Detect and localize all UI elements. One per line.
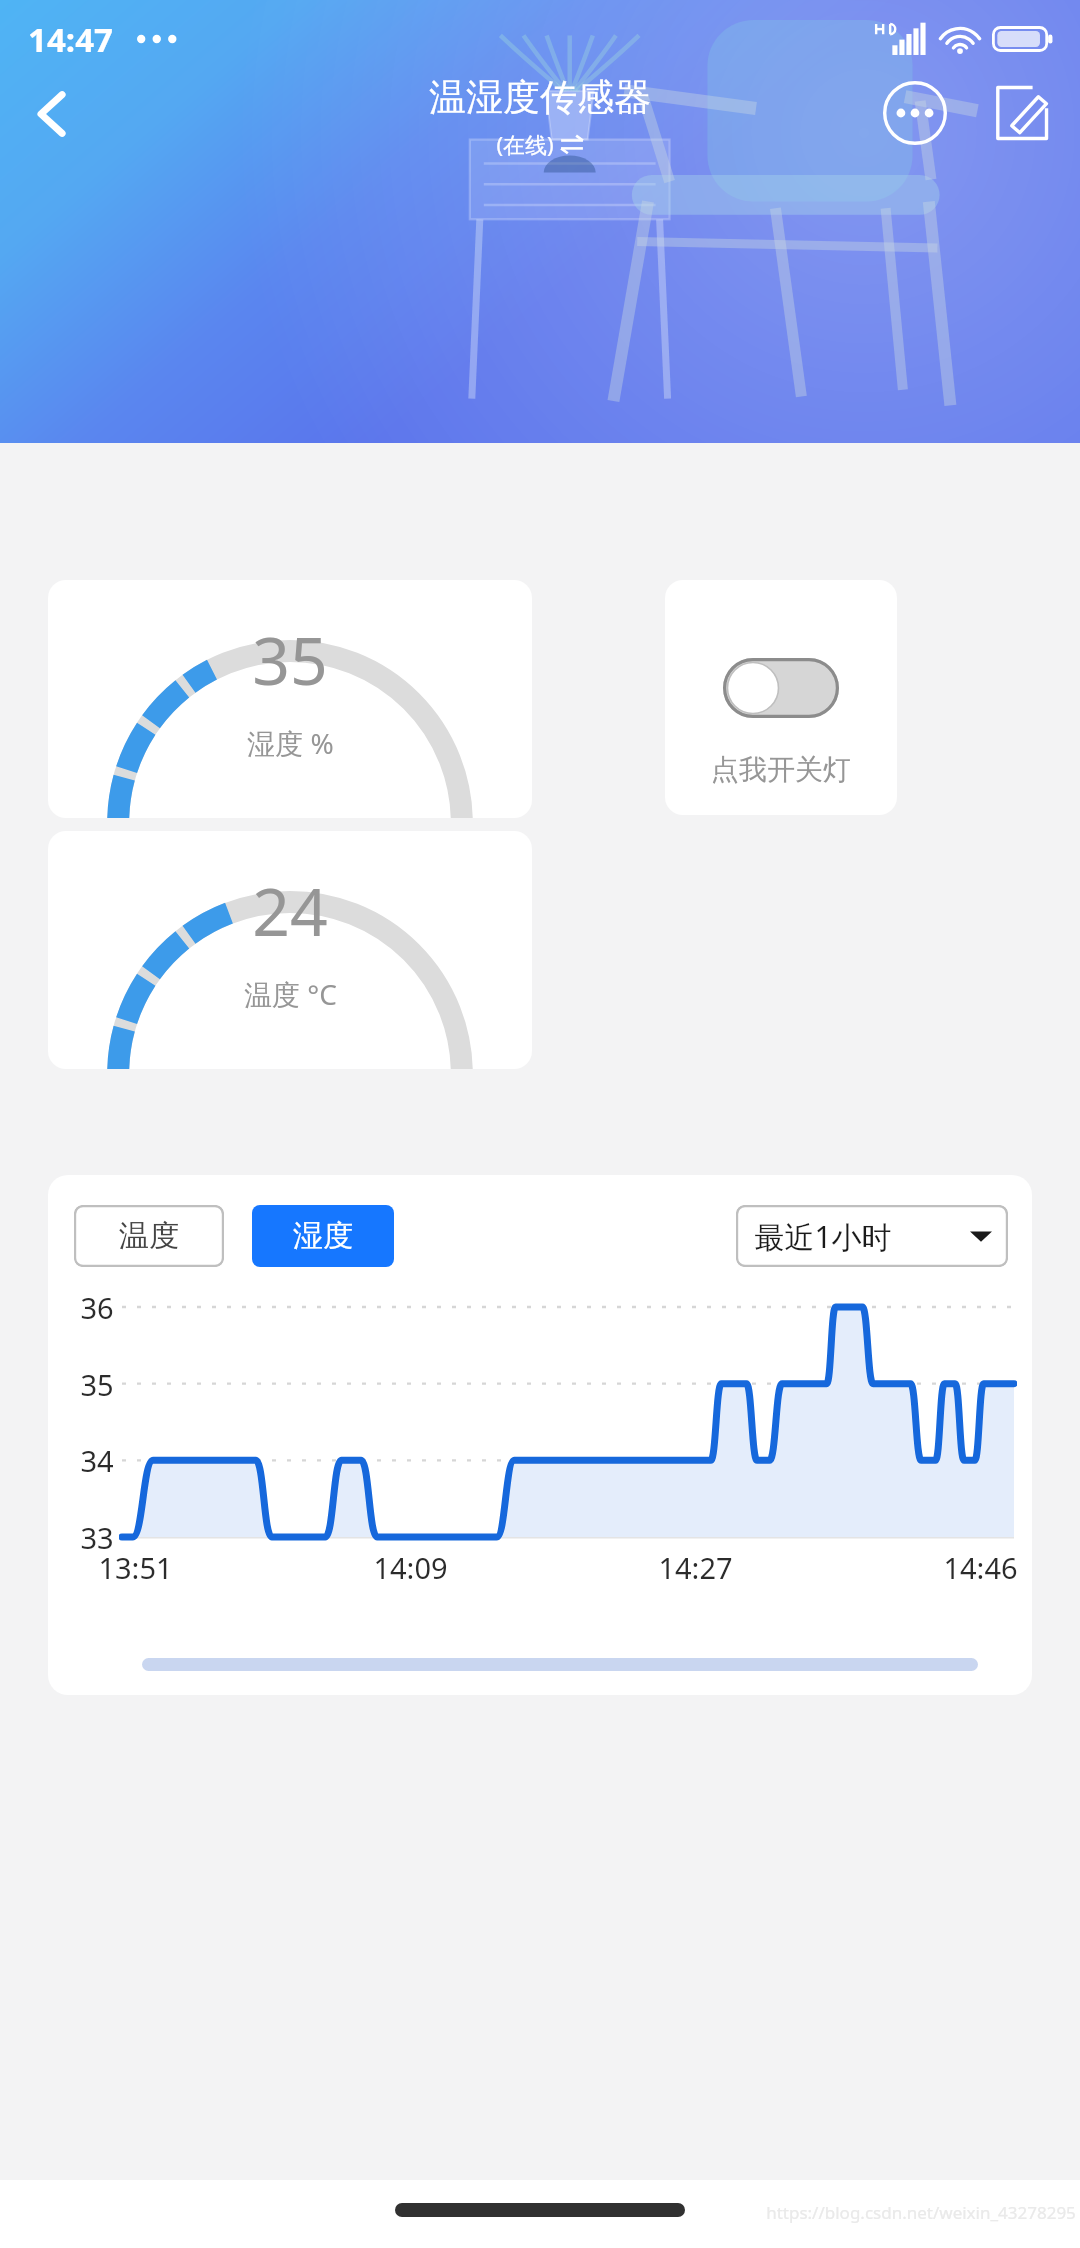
button[interactable]: 24 [48,831,532,1069]
staticText: 14:09 [373,1548,448,1587]
staticText: 24 [252,865,328,955]
staticText: https://blog.csdn.net/weixin_43278295 [766,2201,1076,2224]
staticText: 33 [80,1518,114,1557]
staticText: 14:46 [943,1548,1018,1587]
staticText: 35 [80,1365,114,1404]
staticText: 湿度 % [247,724,334,762]
button[interactable]: 湿度 [252,1205,394,1267]
button[interactable]: 温度 [74,1205,224,1267]
staticText: 13:51 [98,1548,173,1587]
staticText: 34 [80,1441,114,1480]
staticText: (在线) [496,129,554,159]
staticText: 温度 [119,1217,179,1255]
staticText: 温度 °C [244,975,337,1013]
staticText: 最近1小时 [754,1216,892,1257]
button[interactable]: 35 [48,580,532,818]
button[interactable]: More options [876,74,954,152]
staticText: 14:27 [658,1548,733,1587]
button[interactable]: Back [8,70,96,158]
staticText: 湿度 [293,1217,353,1255]
staticText: 14:47 [28,17,113,62]
staticText: 点我开关灯 [711,752,851,787]
button[interactable]: Edit [982,74,1060,152]
staticText: 36 [80,1288,114,1327]
staticText: 温湿度传感器 [429,74,651,121]
staticText: 35 [252,614,328,704]
button[interactable]: 最近1小时 [736,1205,1008,1267]
button[interactable]: 点我开关灯 [665,580,897,815]
